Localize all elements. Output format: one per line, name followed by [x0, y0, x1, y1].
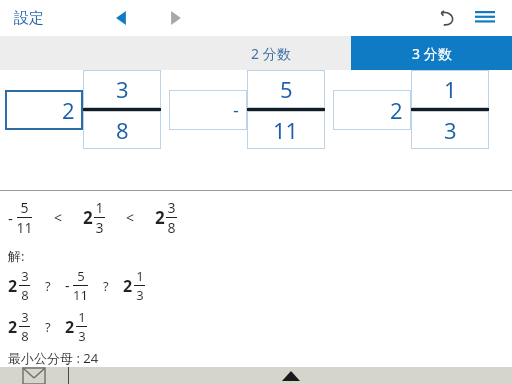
staticText: 3: [95, 218, 104, 237]
staticText: 1: [95, 198, 104, 217]
staticText: 11: [73, 286, 88, 304]
button[interactable]: Undo: [430, 1, 464, 35]
staticText: 2 分数: [251, 44, 291, 63]
staticText: 解:: [8, 247, 25, 265]
staticText: ?: [103, 277, 109, 295]
button[interactable]: Menu: [468, 1, 502, 35]
staticText: 最小公分母 : 24: [8, 349, 99, 367]
staticText: 1: [136, 267, 144, 285]
button[interactable]: 8: [83, 111, 161, 149]
button[interactable]: 設定: [14, 9, 44, 28]
staticText: ?: [45, 277, 51, 295]
staticText: 11: [16, 218, 33, 237]
button[interactable]: Mail: [0, 367, 68, 384]
button[interactable]: Next: [159, 1, 193, 35]
button[interactable]: 11: [247, 111, 325, 149]
staticText: <: [54, 208, 63, 227]
staticText: 2: [8, 316, 18, 338]
staticText: -: [233, 98, 239, 123]
staticText: 5: [77, 267, 85, 285]
button[interactable]: 3: [83, 70, 161, 108]
button[interactable]: Expand: [69, 367, 512, 384]
staticText: -: [65, 276, 70, 295]
staticText: 8: [116, 115, 129, 145]
staticText: 3: [78, 327, 86, 345]
staticText: 1: [78, 308, 86, 326]
staticText: 3: [444, 115, 457, 145]
staticText: 2: [83, 206, 93, 229]
staticText: <: [126, 208, 135, 227]
button[interactable]: 2 分数: [190, 36, 351, 70]
staticText: 2: [62, 95, 75, 125]
staticText: 11: [273, 115, 299, 145]
staticText: 2: [123, 275, 133, 297]
button[interactable]: -: [169, 90, 247, 130]
staticText: 2: [390, 95, 403, 125]
button[interactable]: 3 分数: [351, 36, 512, 70]
staticText: 2: [65, 316, 75, 338]
staticText: 3: [167, 198, 176, 217]
button[interactable]: 3: [411, 111, 489, 149]
staticText: 1: [444, 74, 457, 104]
staticText: -: [8, 208, 13, 228]
staticText: 5: [280, 74, 293, 104]
staticText: 3: [116, 74, 129, 104]
staticText: 5: [20, 198, 29, 217]
staticText: 8: [167, 218, 176, 237]
staticText: 3: [136, 286, 144, 304]
button[interactable]: 5: [247, 70, 325, 108]
staticText: 3 分数: [412, 44, 452, 63]
staticText: ?: [45, 318, 51, 336]
staticText: 2: [155, 206, 165, 229]
button[interactable]: 1: [411, 70, 489, 108]
staticText: 8: [21, 327, 29, 345]
button[interactable]: Previous: [104, 1, 138, 35]
staticText: 2: [8, 275, 18, 297]
staticText: 3: [21, 267, 29, 285]
staticText: 設定: [14, 9, 44, 28]
button[interactable]: 2: [5, 90, 83, 130]
staticText: 3: [21, 308, 29, 326]
button[interactable]: 2: [333, 90, 411, 130]
staticText: 8: [21, 286, 29, 304]
